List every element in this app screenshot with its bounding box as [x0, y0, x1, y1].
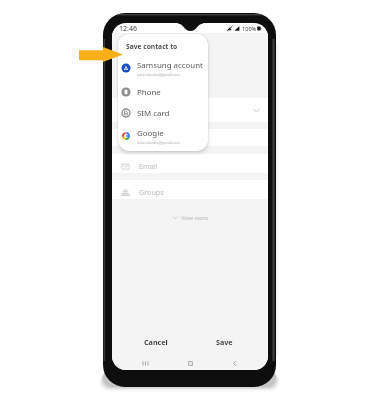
- staticText: Save contact to: [126, 42, 178, 51]
- staticText: Groups: [139, 187, 164, 197]
- staticText: tutorials.abc@gmail.com: [137, 72, 180, 77]
- staticText: Phone: [137, 87, 161, 98]
- staticText: 100%: [242, 25, 257, 33]
- button[interactable]: Phone: [118, 82, 208, 102]
- button[interactable]: Home: [177, 355, 203, 370]
- button[interactable]: Google: [118, 126, 208, 146]
- staticText: Samsung account: [137, 60, 203, 71]
- button[interactable]: Cancel: [122, 333, 190, 350]
- staticText: View more: [181, 214, 209, 221]
- staticText: SIM card: [137, 108, 170, 119]
- button[interactable]: Email: [112, 155, 268, 177]
- button[interactable]: Recents: [132, 355, 158, 370]
- button[interactable]: Groups: [112, 181, 268, 203]
- staticText: Google: [137, 128, 164, 139]
- button[interactable]: SIM card: [118, 103, 208, 123]
- staticText: Cancel: [144, 337, 168, 347]
- button[interactable]: Back: [221, 355, 247, 370]
- staticText: Email: [139, 161, 158, 171]
- button[interactable]: Save: [190, 333, 258, 350]
- button[interactable]: Expand: [246, 100, 266, 120]
- staticText: 12:46: [119, 24, 137, 34]
- staticText: tutorials.abc@gmail.com: [137, 140, 180, 145]
- button[interactable]: Samsung account: [118, 58, 208, 78]
- staticText: Save: [216, 337, 233, 347]
- button[interactable]: View more: [112, 210, 268, 224]
